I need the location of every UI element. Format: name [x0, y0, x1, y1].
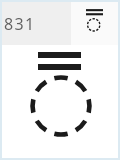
button[interactable]: Scan: [2, 2, 118, 158]
staticText: 831: [4, 13, 36, 35]
button[interactable]: Filter list: [80, 2, 114, 36]
